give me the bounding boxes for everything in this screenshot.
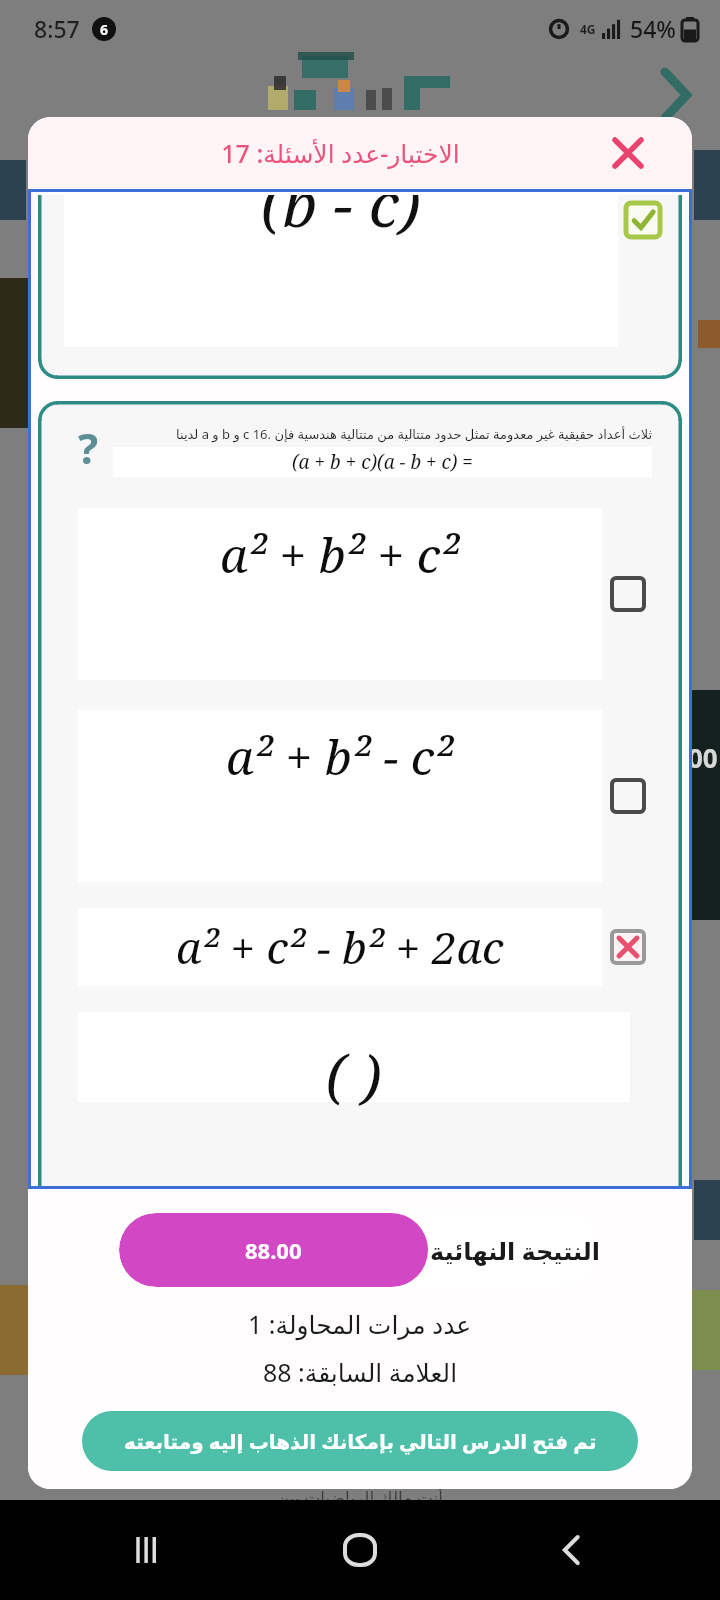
button[interactable]: Close: [604, 129, 652, 177]
staticText: 88.00: [245, 1235, 302, 1265]
staticText: أنت مالك الرياضيات بين: [277, 1486, 443, 1509]
button[interactable]: ( ): [78, 1012, 630, 1102]
staticText: عدد مرات المحاولة: 1: [248, 1307, 472, 1341]
staticText: الاختبار-عدد الأسئلة: 17: [221, 136, 460, 170]
staticText: النتيجة النهائية: [430, 1234, 600, 1267]
staticText: 54%: [630, 13, 676, 44]
staticText: 00: [688, 740, 718, 775]
staticText: ?: [78, 419, 99, 476]
staticText: (b − c): [261, 195, 421, 245]
button[interactable]: Correct answer: [626, 203, 660, 237]
button[interactable]: a² + b² + c²: [60, 508, 660, 680]
button[interactable]: a² + c² − b² + 2ac: [60, 908, 660, 986]
button[interactable]: (b − c): [64, 195, 618, 347]
staticText: 6: [100, 20, 109, 39]
staticText: 4G: [580, 21, 596, 37]
button[interactable]: 88.00: [119, 1213, 602, 1287]
staticText: تم فتح الدرس التالي بإمكانك الذهاب إليه …: [124, 1428, 597, 1455]
staticText: a² + b² + c²: [220, 522, 460, 587]
staticText: ( ): [326, 1036, 382, 1115]
staticText: a² + c² − b² + 2ac: [176, 917, 504, 977]
button[interactable]: Recent apps: [120, 1522, 176, 1578]
button[interactable]: Home: [332, 1522, 388, 1578]
staticText: (a + b + c)(a − b + c) =: [292, 449, 473, 475]
staticText: 8:57: [34, 13, 80, 44]
staticText: لدينا a و b و c ثلاث أعداد حقيقية غير مع…: [176, 425, 652, 443]
button[interactable]: a² + b² − c²: [60, 710, 660, 882]
button[interactable]: تم فتح الدرس التالي بإمكانك الذهاب إليه …: [82, 1411, 638, 1471]
staticText: العلامة السابقة: 88: [263, 1355, 458, 1389]
staticText: a² + b² − c²: [226, 724, 454, 789]
button[interactable]: Back: [544, 1522, 600, 1578]
